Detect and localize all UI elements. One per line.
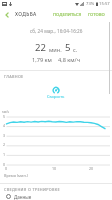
staticText: 10 (52, 166, 57, 171)
staticText: 0 (3, 162, 6, 167)
staticText: Данные (14, 194, 32, 200)
button[interactable]: ПОДЕЛИТЬСЯ (52, 9, 83, 21)
staticText: 5 (65, 41, 71, 54)
staticText: с. (73, 46, 78, 54)
staticText: ГЛАВНОЕ (4, 74, 24, 79)
staticText: 4 (3, 123, 6, 128)
staticText: мин. (49, 46, 62, 54)
staticText: Скорость (47, 94, 65, 99)
staticText: 20 (89, 166, 94, 171)
staticText: 0 (5, 166, 8, 171)
staticText: 4,8 км/ч (58, 56, 80, 64)
staticText: 1,79 км (32, 56, 52, 64)
staticText: Время (мин.) (4, 173, 28, 178)
staticText: 5 (3, 114, 6, 119)
staticText: 15:57 (99, 1, 110, 7)
staticText: ПОДЕЛИТЬСЯ (53, 12, 82, 18)
staticText: 1 (3, 152, 6, 157)
staticText: км/ч (2, 110, 10, 114)
staticText: сб, 24 мар., 16:04-16:26 (30, 28, 83, 34)
staticText: СВЕДЕНИЯ О ТРЕНИРОВКЕ (4, 187, 60, 192)
staticText: 22 (35, 41, 46, 54)
staticText: 2 (3, 142, 6, 147)
button[interactable]: Данные (0, 193, 112, 200)
staticText: ГОТОВО (88, 12, 105, 18)
staticText: 73% (86, 1, 95, 7)
button[interactable]: Back (0, 8, 13, 21)
button[interactable]: ГОТОВО (87, 9, 106, 21)
other: Speed (52, 86, 60, 94)
staticText: 3 (3, 133, 6, 138)
staticText: ХОДЬБА (15, 11, 37, 18)
